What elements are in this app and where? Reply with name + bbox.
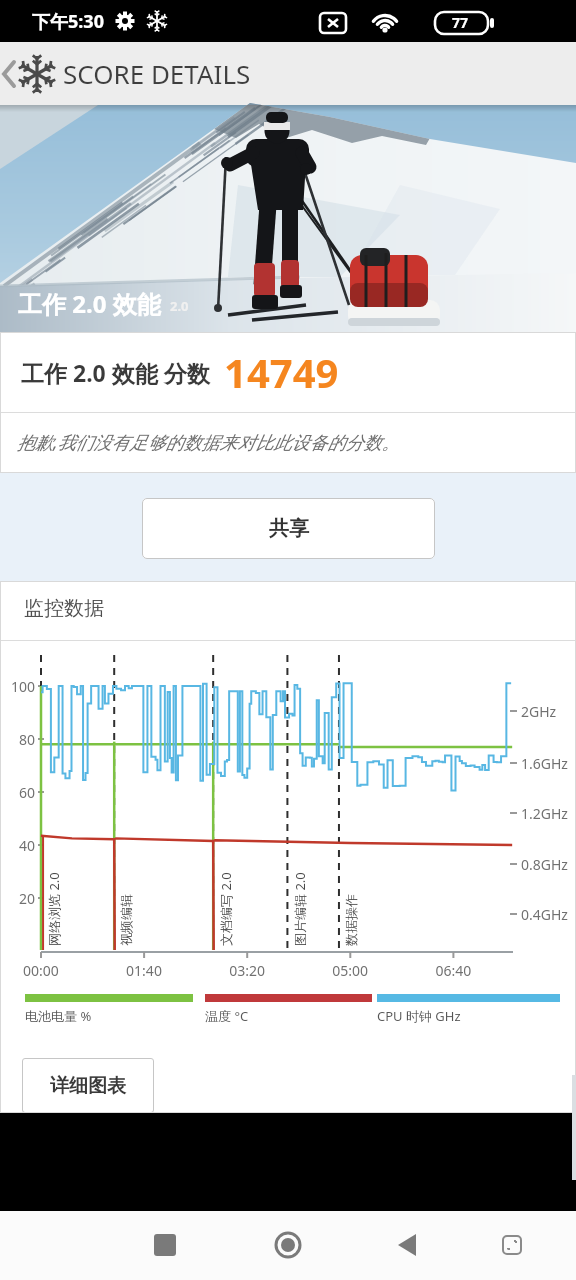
staticText: 电池电量 %: [25, 1007, 92, 1025]
staticText: 工作 2.0 效能 分数: [21, 357, 210, 388]
staticText: 2.0: [170, 297, 189, 315]
button[interactable]: 共享: [142, 498, 435, 559]
staticText: SCORE DETAILS: [63, 56, 251, 91]
staticText: 14749: [224, 345, 339, 399]
button[interactable]: [385, 1223, 429, 1267]
staticText: 温度 °C: [205, 1007, 249, 1025]
button[interactable]: 详细图表: [22, 1058, 154, 1113]
staticText: 抱歉,我们没有足够的数据来对比此设备的分数。: [17, 430, 400, 455]
button[interactable]: [490, 1223, 534, 1267]
staticText: 77: [452, 13, 469, 32]
button[interactable]: SCORE DETAILS: [0, 42, 251, 105]
staticText: 详细图表: [50, 1074, 126, 1098]
staticText: 下午5:30: [32, 9, 104, 34]
staticText: 监控数据: [24, 596, 104, 621]
button[interactable]: [143, 1223, 187, 1267]
button[interactable]: [266, 1223, 310, 1267]
staticText: 工作 2.0 效能: [18, 287, 161, 320]
staticText: CPU 时钟 GHz: [377, 1007, 461, 1025]
staticText: 共享: [269, 516, 309, 541]
